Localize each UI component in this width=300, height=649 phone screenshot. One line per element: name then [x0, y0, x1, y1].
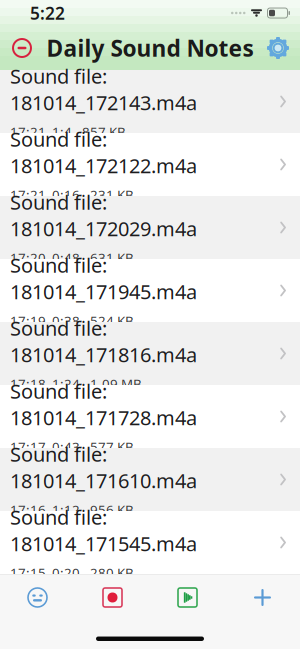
button[interactable]: Delete — [0, 28, 44, 68]
staticText: 17:17 — [10, 438, 46, 455]
staticText: 17:18 — [10, 375, 46, 392]
staticText: Sound file:181014_172029.m4a — [10, 189, 197, 242]
button[interactable]: Sound file:181014_171945.m4a — [0, 259, 300, 322]
staticText: 5:22 — [30, 1, 65, 24]
button[interactable]: Sound file:181014_172029.m4a — [0, 196, 300, 259]
button[interactable]: Settings — [256, 28, 300, 68]
staticText: 0:38 — [52, 312, 80, 329]
button[interactable]: Sound file:181014_172122.m4a — [0, 133, 300, 196]
staticText: 17:21 — [10, 186, 46, 203]
staticText: 524 KB — [90, 312, 134, 329]
staticText: 631 KB — [90, 249, 134, 266]
staticText: 17:19 — [10, 312, 46, 329]
staticText: 17:16 — [10, 501, 46, 518]
staticText: 0:48 — [52, 249, 80, 266]
staticText: 956 KB — [90, 501, 134, 518]
button[interactable]: Sound file:181014_171545.m4a — [0, 511, 300, 574]
button[interactable]: Sound file:181014_171610.m4a — [0, 448, 300, 511]
button[interactable]: Sound file:181014_171728.m4a — [0, 385, 300, 448]
staticText: 0:20 — [52, 564, 80, 581]
staticText: Sound file:181014_171816.m4a — [10, 315, 197, 368]
staticText: 1:4 — [52, 123, 72, 140]
staticText: 17:21 — [10, 123, 46, 140]
button[interactable]: Record — [75, 574, 150, 620]
staticText: 280 KB — [90, 564, 134, 581]
staticText: Sound file:181014_171728.m4a — [10, 378, 197, 431]
staticText: Daily Sound Notes — [46, 33, 253, 63]
staticText: Sound file:181014_171545.m4a — [10, 504, 197, 557]
button[interactable]: Add — [225, 574, 300, 620]
staticText: 857 KB — [82, 123, 126, 140]
staticText: 0:43 — [52, 438, 80, 455]
staticText: 0:16 — [52, 186, 80, 203]
staticText: 577 KB — [90, 438, 134, 455]
staticText: Sound file:181014_171610.m4a — [10, 441, 197, 494]
button[interactable]: Sound file:181014_172143.m4a — [0, 70, 300, 133]
staticText: 1:24 — [52, 375, 80, 392]
staticText: 17:20 — [10, 249, 46, 266]
staticText: 231 KB — [90, 186, 134, 203]
staticText: 1:12 — [52, 501, 80, 518]
button[interactable]: Emotions — [0, 574, 75, 620]
staticText: Sound file:181014_172143.m4a — [10, 63, 197, 116]
staticText: 1.09 MB — [90, 375, 142, 392]
staticText: Sound file:181014_171945.m4a — [10, 252, 197, 305]
staticText: 17:15 — [10, 564, 46, 581]
button[interactable]: Sound file:181014_171816.m4a — [0, 322, 300, 385]
button[interactable]: Play — [150, 574, 225, 620]
staticText: Sound file:181014_172122.m4a — [10, 126, 197, 179]
